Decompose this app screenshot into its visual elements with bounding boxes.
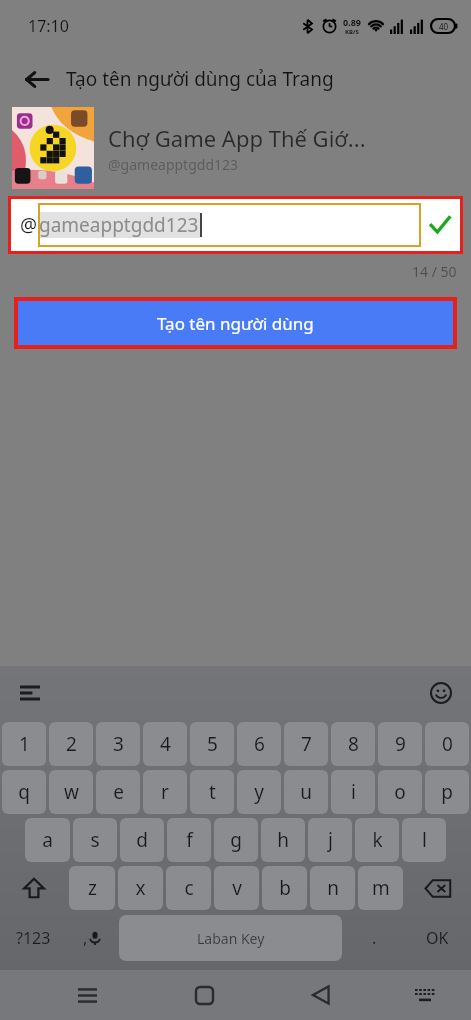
button[interactable]: Emoji	[421, 673, 461, 713]
button[interactable]: Back	[298, 972, 344, 1018]
button[interactable]: d	[120, 818, 164, 862]
button[interactable]: p	[425, 770, 469, 814]
staticText: p	[441, 779, 453, 805]
button[interactable]: a	[25, 818, 70, 862]
staticText: j	[328, 827, 333, 853]
staticText: Tạo tên người dùng	[157, 312, 314, 335]
button[interactable]: 8	[331, 722, 375, 766]
button[interactable]: OK	[406, 915, 469, 961]
button[interactable]: Voice input	[68, 915, 116, 961]
staticText: o	[394, 779, 406, 805]
button[interactable]: Shift	[2, 866, 66, 910]
button[interactable]: 4	[143, 722, 187, 766]
button[interactable]: b	[262, 866, 307, 910]
staticText: 8	[348, 731, 359, 757]
button[interactable]: Back	[14, 57, 58, 101]
button[interactable]: Hide keyboard	[404, 974, 446, 1016]
button[interactable]: w	[49, 770, 93, 814]
staticText: a	[42, 827, 53, 853]
button[interactable]: q	[2, 770, 46, 814]
staticText: gameapptgdd123	[39, 212, 199, 238]
button[interactable]: 1	[2, 722, 46, 766]
staticText: 7	[301, 731, 312, 757]
button[interactable]: f	[167, 818, 211, 862]
button[interactable]: k	[355, 818, 399, 862]
button[interactable]: 0	[425, 722, 469, 766]
button[interactable]: 7	[284, 722, 328, 766]
button[interactable]: c	[166, 866, 211, 910]
staticText: f	[186, 827, 193, 853]
staticText: r	[161, 779, 169, 805]
button[interactable]: Recents	[64, 972, 110, 1018]
staticText: ?123	[16, 927, 51, 949]
staticText: k	[372, 827, 383, 853]
staticText: l	[422, 827, 427, 853]
staticText: w	[64, 779, 79, 805]
staticText: d	[136, 827, 148, 853]
staticText: 14 / 50	[412, 262, 457, 281]
button[interactable]: 3	[96, 722, 140, 766]
staticText: b	[279, 875, 291, 901]
button[interactable]: x	[118, 866, 163, 910]
staticText: 2	[66, 731, 77, 757]
button[interactable]: h	[261, 818, 305, 862]
button[interactable]: Keyboard menu	[10, 673, 50, 713]
button[interactable]: Laban Key	[119, 915, 342, 961]
button[interactable]: Backspace	[406, 866, 469, 910]
button[interactable]: o	[378, 770, 422, 814]
button[interactable]: @	[11, 199, 460, 251]
staticText: 40	[439, 21, 449, 32]
staticText: Tạo tên người dùng của Trang	[66, 66, 334, 92]
button[interactable]: Tạo tên người dùng	[18, 301, 453, 345]
staticText: 0.89	[343, 16, 361, 28]
button[interactable]: i	[331, 770, 375, 814]
button[interactable]: 6	[237, 722, 281, 766]
staticText: 0	[442, 731, 453, 757]
button[interactable]: y	[237, 770, 281, 814]
staticText: 5	[207, 731, 218, 757]
staticText: 3	[113, 731, 124, 757]
button[interactable]: m	[358, 866, 403, 910]
staticText: @gameapptgdd123	[108, 155, 239, 174]
button[interactable]: e	[96, 770, 140, 814]
staticText: x	[135, 875, 146, 901]
button[interactable]: 2	[49, 722, 93, 766]
button[interactable]: 9	[378, 722, 422, 766]
staticText: y	[254, 779, 264, 805]
button[interactable]: u	[284, 770, 328, 814]
staticText: 17:10	[28, 15, 69, 37]
staticText: 4	[160, 731, 171, 757]
button[interactable]: z	[69, 866, 115, 910]
staticText: m	[372, 875, 390, 901]
staticText: s	[90, 827, 100, 853]
staticText: q	[18, 779, 30, 805]
staticText: 6	[254, 731, 265, 757]
button[interactable]: Chợ Game App Thế Giớ...	[0, 106, 471, 190]
staticText: v	[232, 875, 242, 901]
button[interactable]: s	[73, 818, 117, 862]
button[interactable]: r	[143, 770, 187, 814]
staticText: .	[372, 927, 377, 949]
staticText: 9	[395, 731, 406, 757]
button[interactable]: ?123	[2, 915, 65, 961]
staticText: ,	[83, 927, 88, 949]
button[interactable]: t	[190, 770, 234, 814]
button[interactable]: j	[308, 818, 352, 862]
staticText: t	[209, 779, 216, 805]
staticText: h	[277, 827, 289, 853]
button[interactable]: Home	[181, 972, 227, 1018]
staticText: KB/S	[345, 28, 359, 36]
staticText: n	[327, 875, 339, 901]
staticText: c	[184, 875, 194, 901]
button[interactable]: l	[402, 818, 446, 862]
staticText: g	[230, 827, 242, 853]
staticText: OK	[426, 927, 449, 949]
staticText: u	[300, 779, 312, 805]
staticText: i	[351, 779, 356, 805]
staticText: @	[20, 212, 38, 238]
button[interactable]: n	[310, 866, 355, 910]
button[interactable]: g	[214, 818, 258, 862]
button[interactable]: 5	[190, 722, 234, 766]
button[interactable]: v	[214, 866, 259, 910]
